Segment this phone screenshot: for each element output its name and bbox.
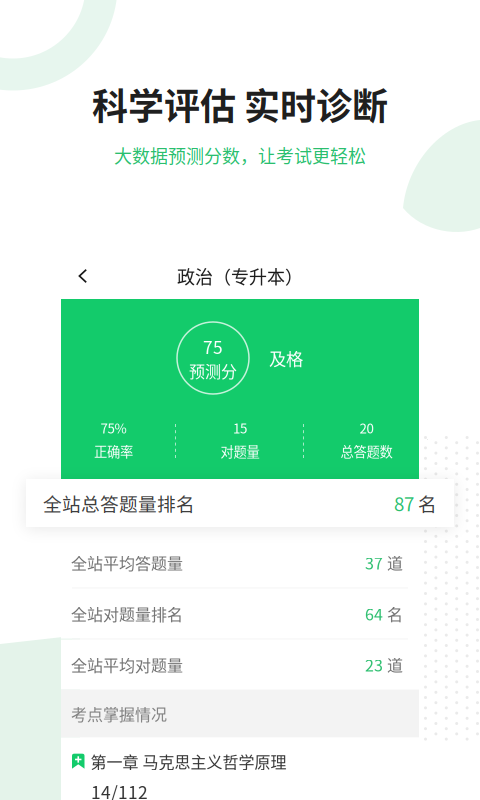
staticText: 15 <box>233 418 247 437</box>
staticText: 道 <box>383 653 403 676</box>
staticText: 及格 <box>269 345 303 371</box>
staticText: 全站平均答题量 <box>71 551 183 574</box>
staticText: 75 <box>203 334 223 359</box>
staticText: 正确率 <box>94 441 133 461</box>
staticText: 全站对题量排名 <box>71 602 183 625</box>
staticText: 政治（专升本） <box>177 263 303 289</box>
staticText: 37 <box>365 551 383 574</box>
staticText: 名 <box>383 602 403 625</box>
staticText: 预测分 <box>189 359 237 382</box>
staticText: 20 <box>359 418 373 437</box>
staticText: 全站平均对题量 <box>71 653 183 676</box>
staticText: 第一章 马克思主义哲学原理 <box>90 750 286 773</box>
staticText: 总答题数 <box>340 441 392 461</box>
button[interactable]: 全站平均对题量 <box>61 640 419 690</box>
button[interactable]: 全站总答题量排名 <box>26 479 454 527</box>
staticText: 考点掌握情况 <box>71 702 167 725</box>
staticText: 14/112 <box>91 779 148 800</box>
button[interactable]: 第一章 马克思主义哲学原理 <box>61 738 419 800</box>
staticText: 64 <box>365 602 383 625</box>
staticText: 75% <box>100 418 126 437</box>
button[interactable]: Back <box>61 254 88 297</box>
staticText: 道 <box>383 551 403 574</box>
button[interactable]: 全站对题量排名 <box>61 589 419 639</box>
staticText: 对题量 <box>220 441 259 461</box>
staticText: 全站总答题量排名 <box>43 489 195 516</box>
staticText: 名 <box>414 489 437 516</box>
staticText: 科学评估 实时诊断 <box>92 78 388 130</box>
button[interactable]: 全站平均答题量 <box>61 538 419 588</box>
staticText: 大数据预测分数，让考试更轻松 <box>114 142 366 168</box>
staticText: 23 <box>365 653 383 676</box>
staticText: 87 <box>394 489 414 516</box>
